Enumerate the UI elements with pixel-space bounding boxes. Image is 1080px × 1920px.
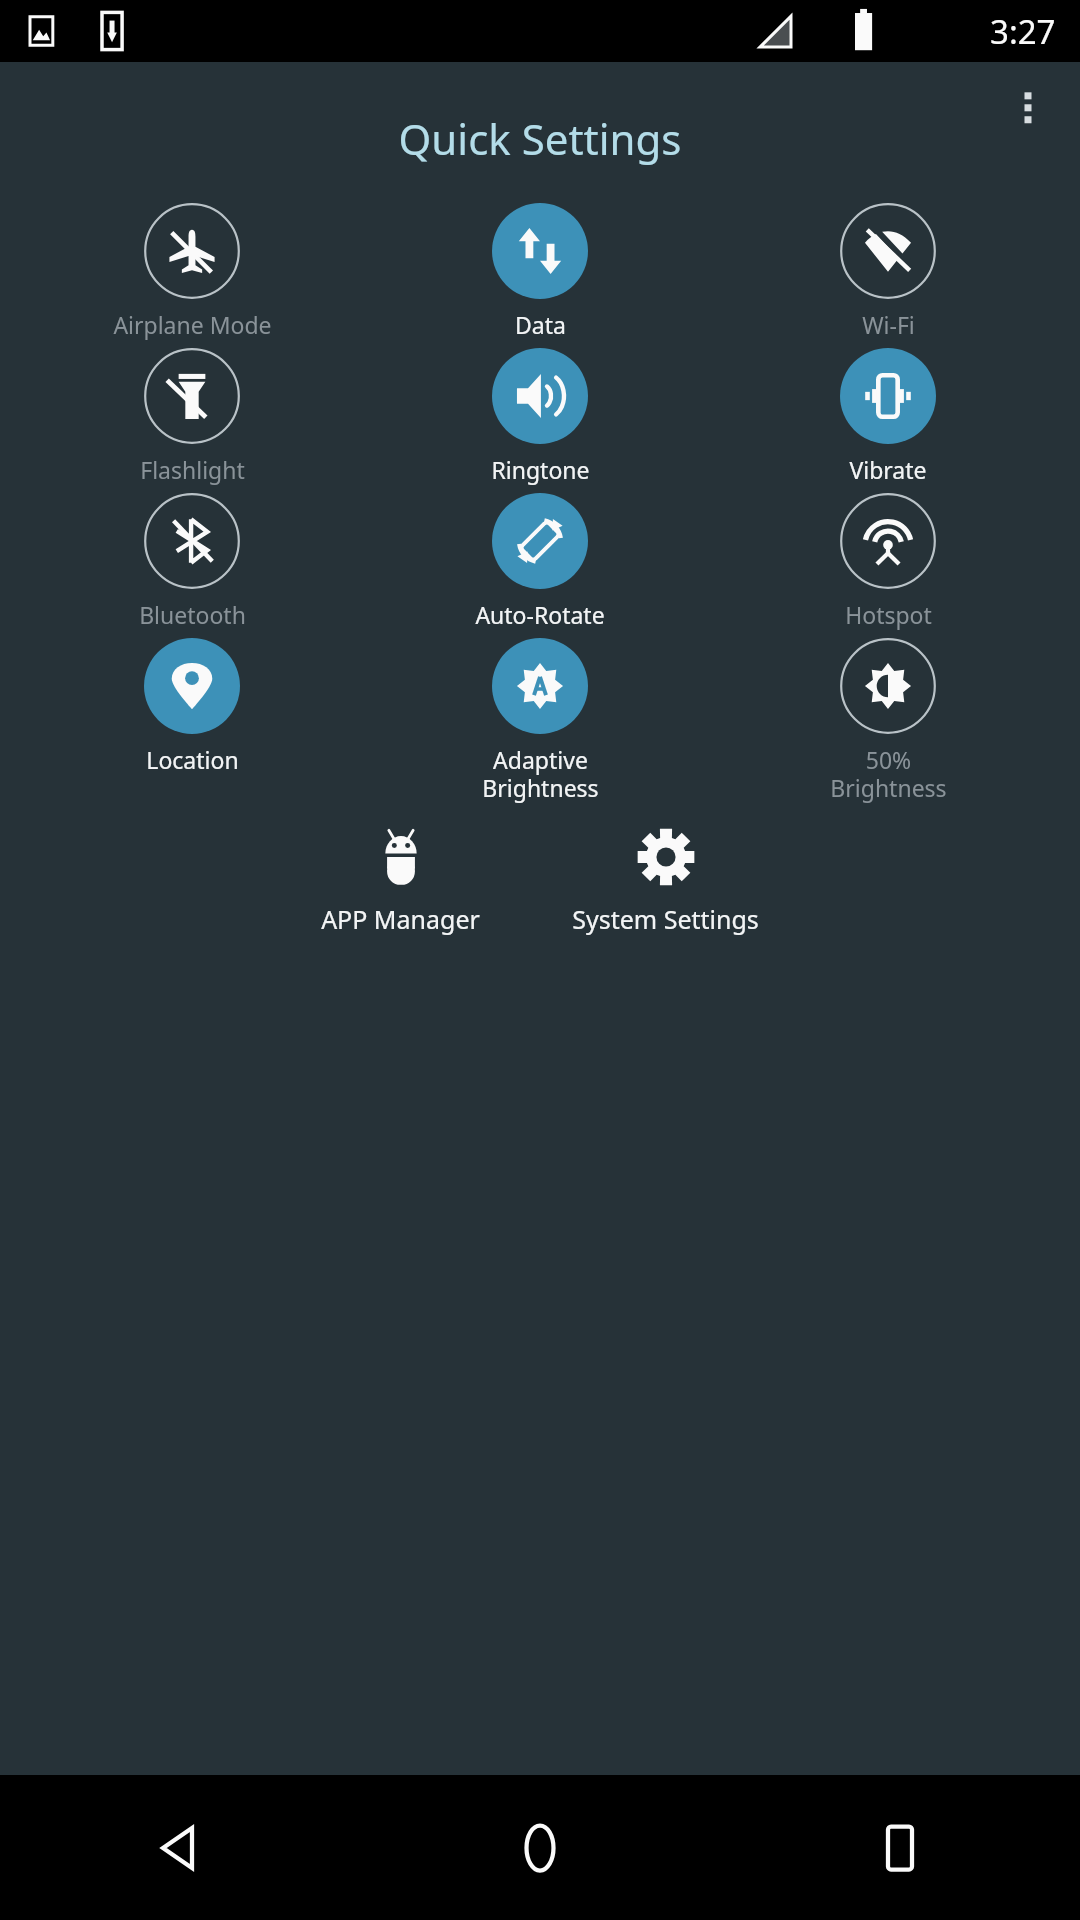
button[interactable]: Back <box>0 1775 360 1920</box>
staticText: Airplane Mode <box>113 309 272 340</box>
button[interactable]: Recent apps <box>720 1775 1080 1920</box>
staticText: 3:27 <box>990 9 1056 54</box>
staticText: Quick Settings <box>0 110 1080 167</box>
button[interactable]: Auto-Rotate <box>366 489 714 634</box>
button[interactable]: Data <box>366 199 714 344</box>
staticText: Flashlight <box>140 454 245 485</box>
staticText: APP Manager <box>321 902 480 936</box>
button[interactable]: More options <box>1002 84 1054 136</box>
staticText: Auto-Rotate <box>475 599 605 630</box>
button[interactable]: Flashlight <box>18 344 366 489</box>
button[interactable]: Ringtone <box>366 344 714 489</box>
button[interactable]: Bluetooth <box>18 489 366 634</box>
staticText: Wi-Fi <box>862 309 915 340</box>
button[interactable]: Location <box>18 634 366 779</box>
button[interactable]: System Settings <box>558 822 773 942</box>
button[interactable]: Hotspot <box>714 489 1062 634</box>
button[interactable]: Home <box>360 1775 720 1920</box>
button[interactable]: Vibrate <box>714 344 1062 489</box>
staticText: Data <box>515 309 566 340</box>
staticText: Adaptive Brightness <box>482 744 599 804</box>
staticText: Bluetooth <box>139 599 246 630</box>
staticText: System Settings <box>572 902 759 936</box>
button[interactable]: 50% Brightness <box>714 634 1062 808</box>
button[interactable]: Wi-Fi <box>714 199 1062 344</box>
staticText: Vibrate <box>849 454 927 485</box>
button[interactable]: Adaptive Brightness <box>366 634 714 808</box>
staticText: Hotspot <box>845 599 932 630</box>
staticText: 50% Brightness <box>830 744 947 804</box>
staticText: Ringtone <box>491 454 590 485</box>
button[interactable]: APP Manager <box>307 822 494 942</box>
staticText: Location <box>146 744 239 775</box>
button[interactable]: Airplane Mode <box>18 199 366 344</box>
